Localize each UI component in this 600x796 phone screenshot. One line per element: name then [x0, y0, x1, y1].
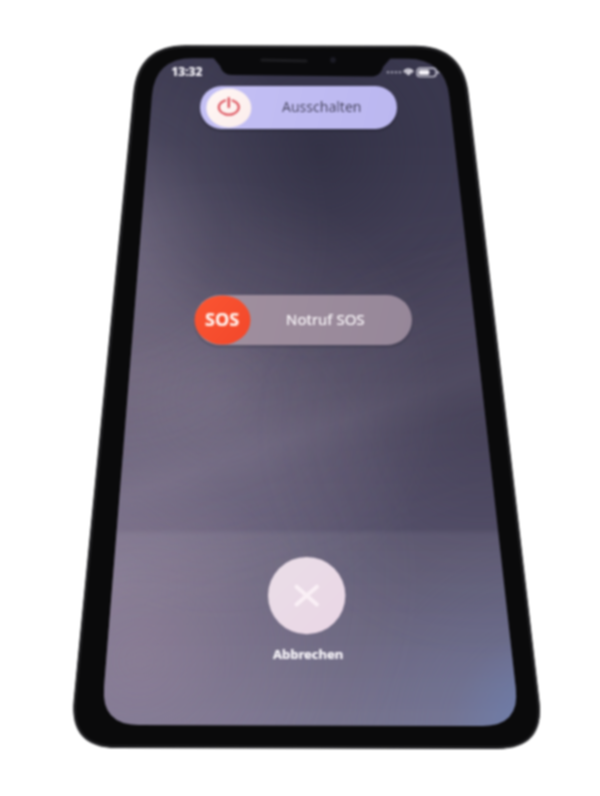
- button[interactable]: Abbrechen: [268, 558, 347, 637]
- button[interactable]: Ausschalten: [200, 86, 398, 129]
- button[interactable]: Notruf SOS: [193, 296, 413, 344]
